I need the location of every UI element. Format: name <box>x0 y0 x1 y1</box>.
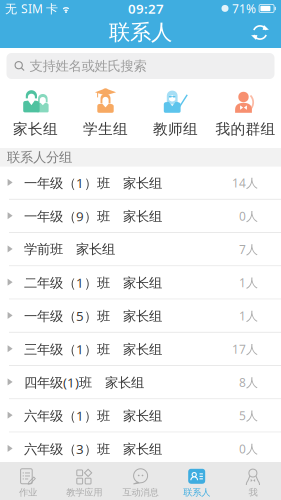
button[interactable]: 教师组 <box>140 82 210 144</box>
button[interactable]: 六年级（5）班 家长组 <box>0 466 281 499</box>
staticText: 三年级（1）班 家长组 <box>24 340 162 358</box>
staticText: 互动消息 <box>122 487 158 498</box>
staticText: 我的群组 <box>215 120 275 138</box>
button[interactable]: 学生组 <box>70 82 140 144</box>
button[interactable]: 作业 <box>0 462 56 500</box>
staticText: 学生组 <box>83 120 128 138</box>
button[interactable]: 一年级（9）班 家长组 <box>0 200 281 233</box>
button[interactable]: 四年级(1)班 家长组 <box>0 366 281 399</box>
staticText: 联系人分组 <box>7 149 72 165</box>
button[interactable]: 一年级（5）班 家长组 <box>0 300 281 333</box>
button[interactable]: 互动消息 <box>112 462 169 500</box>
staticText: 家长组 <box>13 120 58 138</box>
button[interactable]: 支持姓名或姓氏搜索 <box>6 53 274 79</box>
staticText: 联系人 <box>183 487 210 498</box>
staticText: 1人 <box>239 274 258 290</box>
staticText: 教师组 <box>153 120 198 138</box>
staticText: 教学应用 <box>66 487 102 498</box>
button[interactable]: 三年级（1）班 家长组 <box>0 333 281 366</box>
staticText: 0人 <box>239 208 258 224</box>
staticText: 六年级（5）班 家长组 <box>24 473 162 491</box>
staticText: 无 SIM 卡 <box>5 0 58 16</box>
staticText: 二年级（1）班 家长组 <box>24 274 162 291</box>
staticText: 09:27 <box>128 0 164 17</box>
staticText: 17人 <box>232 341 258 357</box>
staticText: 0人 <box>239 441 258 457</box>
button[interactable]: 教学应用 <box>56 462 112 500</box>
button[interactable]: 刷新 <box>239 17 281 48</box>
staticText: 14人 <box>232 175 258 191</box>
staticText: 一年级（9）班 家长组 <box>24 207 162 225</box>
button[interactable]: 一年级（1）班 家长组 <box>0 167 281 200</box>
staticText: 支持姓名或姓氏搜索 <box>29 58 146 74</box>
button[interactable]: 六年级（1）班 家长组 <box>0 399 281 433</box>
staticText: 1人 <box>239 308 258 324</box>
staticText: 四年级(1)班 家长组 <box>24 373 144 391</box>
staticText: 学前班 家长组 <box>24 241 115 257</box>
button[interactable]: 我的群组 <box>210 82 280 144</box>
button[interactable]: 六年级（3）班 家长组 <box>0 433 281 466</box>
button[interactable]: 家长组 <box>0 82 70 144</box>
staticText: 一年级（5）班 家长组 <box>24 307 162 325</box>
button[interactable]: 联系人 <box>169 462 225 500</box>
staticText: 六年级（1）班 家长组 <box>24 407 162 424</box>
button[interactable]: 学前班 家长组 <box>0 233 281 266</box>
staticText: 5人 <box>239 407 258 423</box>
staticText: 六年级（3）班 家长组 <box>24 440 162 458</box>
staticText: 作业 <box>19 487 37 498</box>
staticText: 联系人 <box>109 19 172 46</box>
staticText: 2人 <box>239 474 258 490</box>
staticText: 71% <box>232 0 256 16</box>
button[interactable]: 我 <box>225 462 281 500</box>
staticText: 一年级（1）班 家长组 <box>24 174 162 192</box>
staticText: 我 <box>248 487 257 498</box>
button[interactable]: 二年级（1）班 家长组 <box>0 266 281 300</box>
staticText: 8人 <box>239 374 258 390</box>
staticText: 7人 <box>239 241 258 257</box>
